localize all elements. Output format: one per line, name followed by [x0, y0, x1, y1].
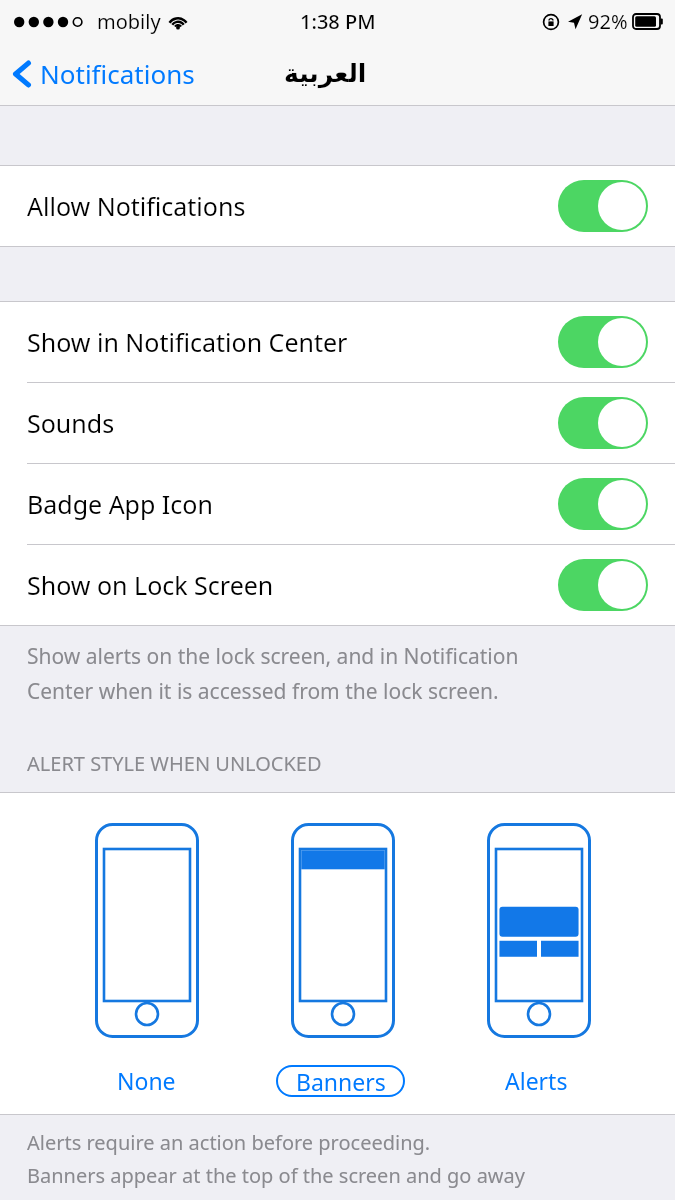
button[interactable]: None alert style [95, 823, 199, 1038]
button[interactable]: Banners alert style [291, 823, 395, 1038]
staticText: Allow Notifications [27, 189, 246, 223]
staticText: mobily [97, 8, 161, 35]
staticText: Show on Lock Screen [27, 568, 274, 602]
staticText: Banners appear at the top of the screen … [27, 1162, 525, 1189]
staticText: Banners [296, 1066, 386, 1097]
button[interactable]: Notifications [0, 50, 207, 97]
staticText: 92% [588, 8, 628, 35]
staticText: Notifications [40, 56, 195, 91]
staticText: Sounds [27, 406, 115, 440]
staticText: None [117, 1065, 176, 1096]
staticText: العربية [284, 59, 367, 88]
button[interactable]: Badge App Icon [0, 464, 675, 544]
staticText: Alerts [505, 1065, 568, 1096]
button[interactable]: Show in Notification Center [0, 302, 675, 382]
staticText: 1:38 PM [300, 8, 376, 35]
button[interactable]: None [80, 1060, 213, 1100]
staticText: Alerts require an action before proceedi… [27, 1129, 431, 1156]
staticText: Center when it is accessed from the lock… [27, 677, 499, 706]
button[interactable]: Sounds [0, 383, 675, 463]
staticText: Show alerts on the lock screen, and in N… [27, 642, 519, 671]
button[interactable]: Show on Lock Screen [0, 545, 675, 625]
staticText: Badge App Icon [27, 487, 213, 521]
staticText: ALERT STYLE WHEN UNLOCKED [27, 750, 322, 777]
button[interactable]: Banners [276, 1065, 405, 1097]
button[interactable]: Alerts alert style [487, 823, 591, 1038]
button[interactable]: Alerts [470, 1060, 603, 1100]
staticText: Show in Notification Center [27, 325, 348, 359]
button[interactable]: Allow Notifications [0, 166, 675, 246]
